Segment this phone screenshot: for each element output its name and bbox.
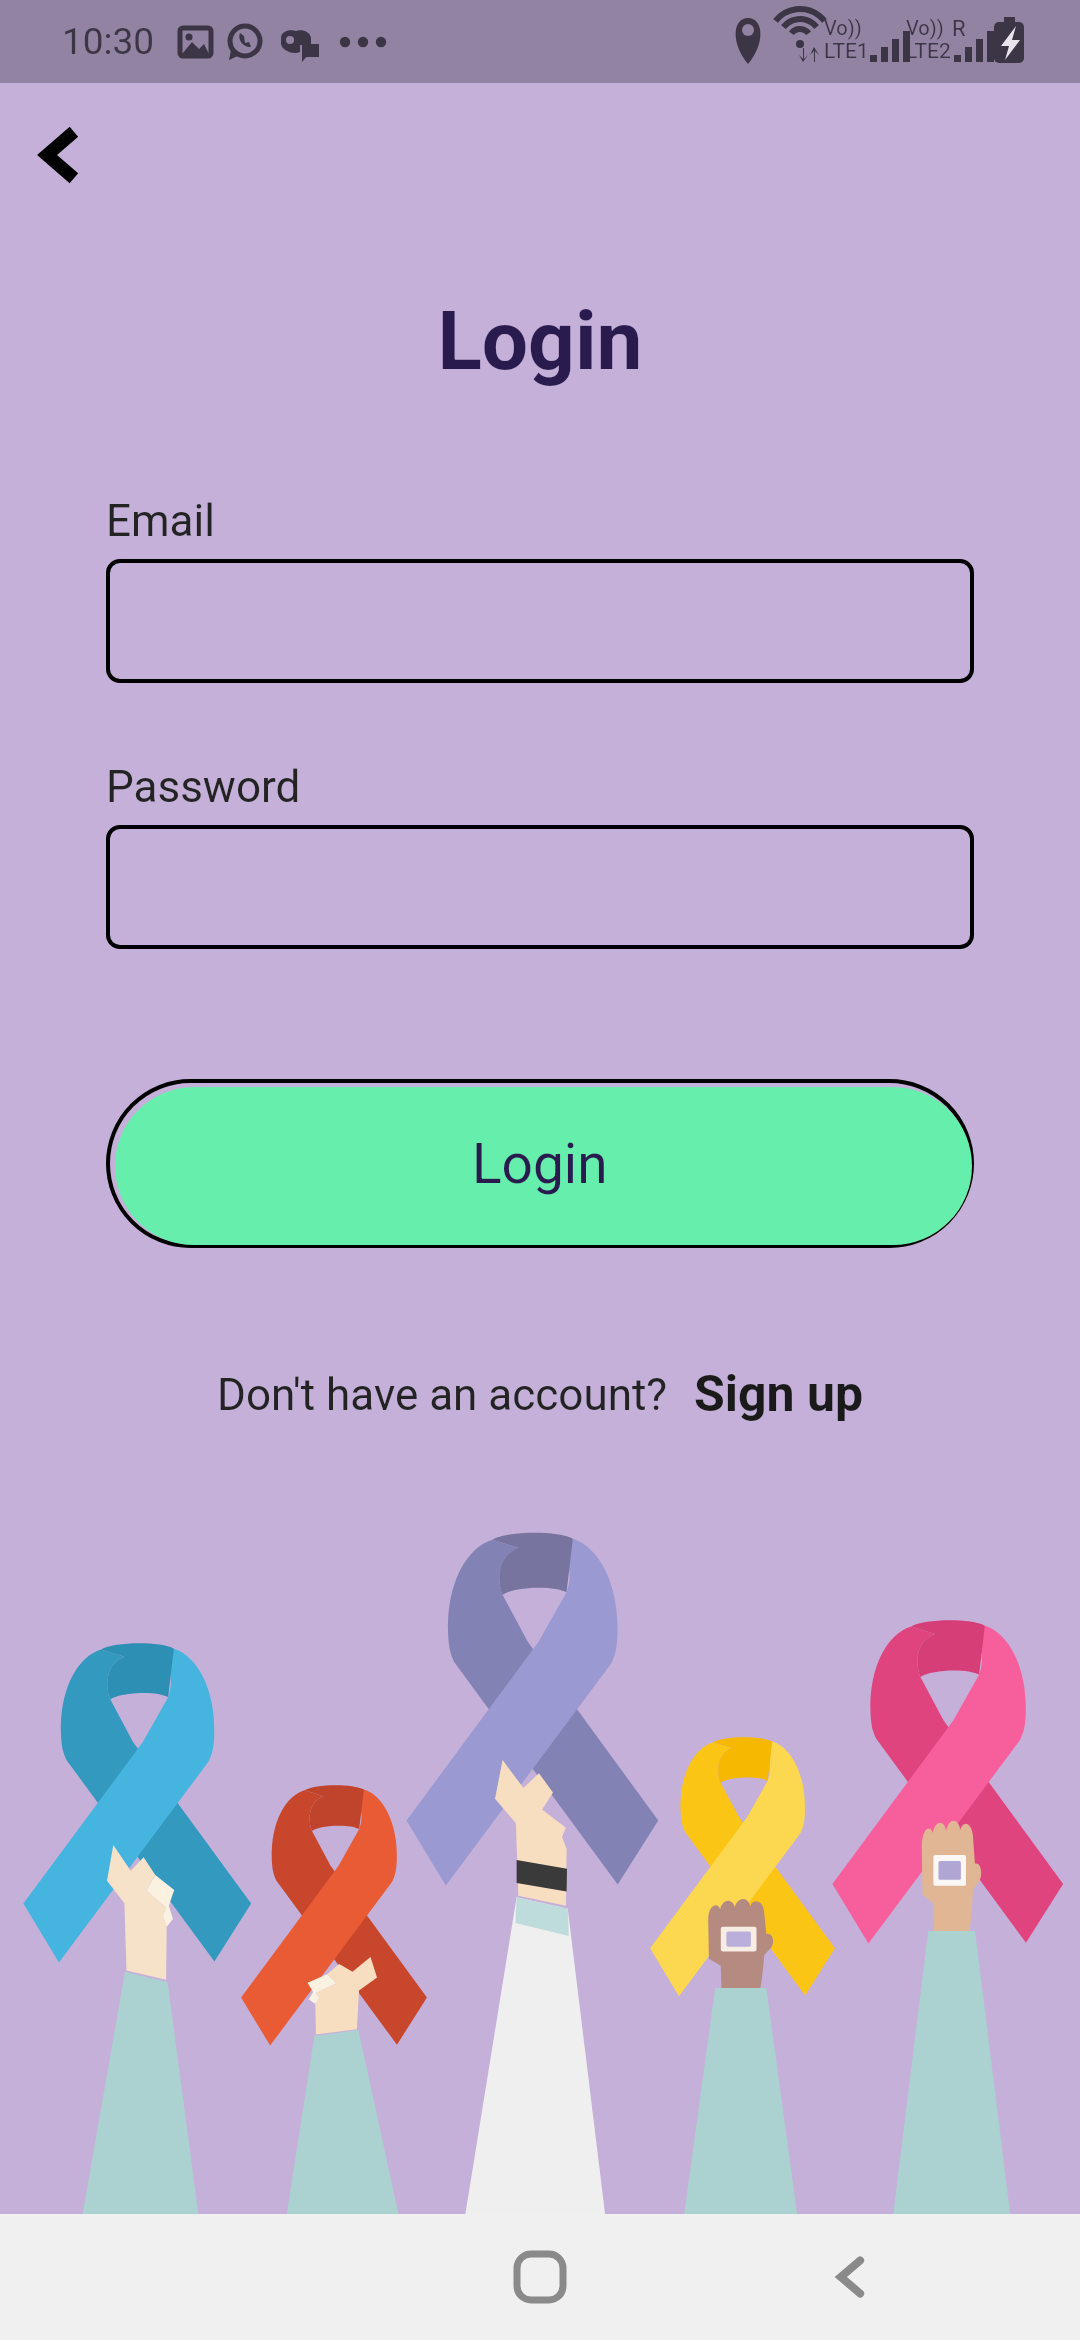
staticText: R [952, 16, 966, 42]
staticText: LTE2 [906, 39, 951, 64]
button[interactable]: Login [106, 1079, 974, 1248]
staticText: Vo)) [906, 16, 944, 39]
button[interactable]: Back [795, 2222, 905, 2332]
button[interactable] [106, 559, 974, 683]
staticText: LTE1 [824, 39, 869, 64]
staticText: Login [472, 1132, 608, 1196]
staticText: Email [106, 495, 215, 547]
button[interactable]: Home [480, 2217, 600, 2337]
staticText: Vo)) [824, 16, 862, 39]
staticText: Don't have an account? [217, 1369, 668, 1421]
staticText: Sign up [694, 1365, 864, 1424]
staticText: 10:30 [62, 20, 155, 63]
button[interactable]: Back [10, 107, 106, 203]
button[interactable]: Sign up [694, 1365, 864, 1424]
staticText: Login [0, 293, 1080, 389]
staticText: Password [106, 761, 301, 813]
button[interactable] [106, 825, 974, 949]
